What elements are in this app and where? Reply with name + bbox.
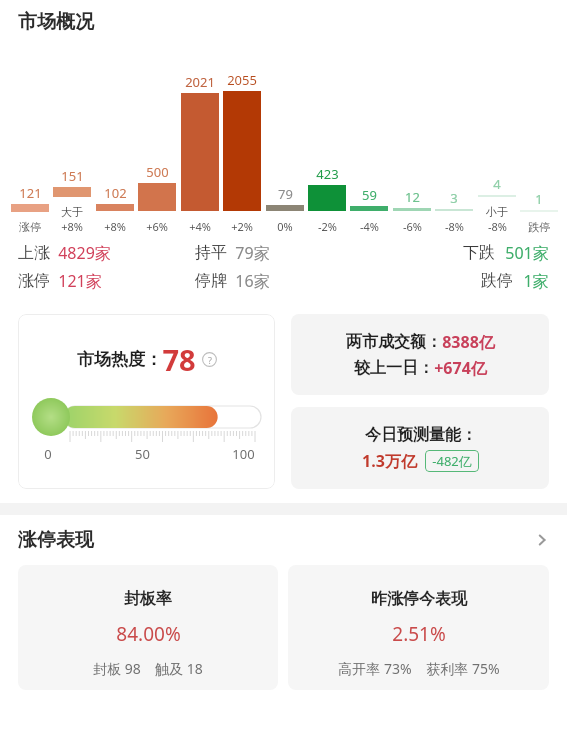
button[interactable]: 涨停表现 bbox=[0, 515, 567, 565]
staticText: 涨停 bbox=[18, 271, 50, 291]
button[interactable]: 封板率 bbox=[18, 565, 278, 690]
staticText: 84.00% bbox=[116, 621, 181, 647]
staticText: -6% bbox=[403, 219, 422, 234]
staticText: 市场概况 bbox=[18, 10, 94, 34]
staticText: 59 bbox=[362, 186, 377, 204]
staticText: 500 bbox=[146, 163, 169, 181]
staticText: +2% bbox=[231, 219, 253, 234]
staticText: 较上一日： bbox=[354, 358, 434, 378]
staticText: 0% bbox=[277, 219, 293, 234]
staticText: 昨涨停今表现 bbox=[371, 589, 467, 609]
button[interactable]: 说明 bbox=[202, 352, 217, 367]
staticText: 79 bbox=[278, 185, 293, 203]
staticText: 16家 bbox=[235, 270, 270, 292]
staticText: 423 bbox=[316, 165, 339, 183]
staticText: 停牌 bbox=[195, 271, 227, 291]
other: 更多 bbox=[527, 525, 557, 555]
staticText: 小于 bbox=[486, 205, 508, 219]
staticText: 下跌 bbox=[463, 243, 495, 263]
staticText: 121家 bbox=[58, 270, 102, 292]
staticText: +6% bbox=[146, 219, 168, 234]
staticText: 封板率 bbox=[124, 589, 172, 609]
staticText: 50 bbox=[135, 445, 150, 463]
staticText: 79家 bbox=[235, 242, 270, 264]
staticText: 151 bbox=[61, 167, 84, 185]
staticText: 两市成交额： bbox=[346, 332, 442, 352]
staticText: 大于 bbox=[61, 205, 83, 219]
button[interactable]: 两市成交额： bbox=[291, 314, 549, 395]
staticText: -8% bbox=[488, 219, 507, 234]
staticText: 高开率 73% bbox=[338, 659, 412, 678]
staticText: 获利率 75% bbox=[426, 659, 500, 678]
button[interactable]: 今日预测量能： bbox=[291, 407, 549, 489]
staticText: 0 bbox=[44, 445, 52, 463]
staticText: 4829家 bbox=[58, 242, 111, 264]
staticText: 3 bbox=[450, 189, 458, 207]
staticText: -2% bbox=[318, 219, 337, 234]
staticText: 501家 bbox=[505, 242, 549, 264]
staticText: +4% bbox=[189, 219, 211, 234]
staticText: 1.3万亿 bbox=[362, 450, 417, 472]
staticText: ? bbox=[208, 354, 212, 366]
button[interactable]: 市场热度： bbox=[18, 314, 275, 489]
staticText: 1 bbox=[535, 190, 543, 208]
staticText: 持平 bbox=[195, 243, 227, 263]
staticText: 4 bbox=[493, 175, 501, 193]
staticText: 封板 98 bbox=[93, 659, 141, 678]
staticText: +8% bbox=[61, 219, 83, 234]
staticText: -8% bbox=[445, 219, 464, 234]
staticText: -482亿 bbox=[432, 452, 472, 470]
staticText: 2055 bbox=[227, 71, 257, 89]
staticText: 78 bbox=[162, 340, 196, 379]
staticText: 1家 bbox=[523, 270, 549, 292]
staticText: 今日预测量能： bbox=[365, 425, 477, 445]
button[interactable]: 昨涨停今表现 bbox=[288, 565, 549, 690]
staticText: 市场热度： bbox=[77, 349, 162, 370]
staticText: 100 bbox=[232, 445, 255, 463]
staticText: +8% bbox=[104, 219, 126, 234]
staticText: 2.51% bbox=[392, 621, 446, 647]
staticText: 涨停 bbox=[19, 220, 41, 234]
staticText: 上涨 bbox=[18, 243, 50, 263]
staticText: 121 bbox=[19, 184, 42, 202]
staticText: 跌停 bbox=[528, 220, 550, 234]
staticText: 102 bbox=[104, 184, 127, 202]
staticText: 触及 18 bbox=[155, 659, 203, 678]
staticText: 12 bbox=[405, 188, 420, 206]
staticText: 跌停 bbox=[481, 271, 513, 291]
staticText: 2021 bbox=[185, 73, 215, 91]
staticText: +674亿 bbox=[434, 357, 487, 379]
staticText: -4% bbox=[360, 219, 379, 234]
staticText: 8388亿 bbox=[442, 331, 495, 353]
staticText: 涨停表现 bbox=[18, 528, 94, 552]
